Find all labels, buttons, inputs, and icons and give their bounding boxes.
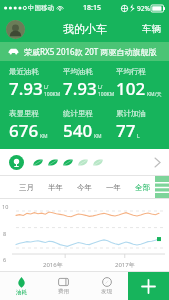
button[interactable]: Menu bbox=[155, 176, 169, 198]
staticText: L/100KM bbox=[44, 84, 63, 98]
button[interactable]: 半年 bbox=[43, 180, 68, 195]
button[interactable]: 油耗 bbox=[0, 272, 42, 300]
staticText: 102 bbox=[116, 77, 146, 100]
staticText: 540 bbox=[63, 119, 93, 142]
staticText: 平均油耗 bbox=[63, 67, 93, 76]
staticText: 全部 bbox=[135, 183, 150, 192]
button[interactable]: Profile bbox=[6, 20, 25, 39]
staticText: 一年 bbox=[106, 183, 121, 192]
staticText: L bbox=[137, 133, 140, 140]
staticText: 676 bbox=[9, 119, 39, 142]
button[interactable]: 一年 bbox=[101, 180, 126, 195]
staticText: 18:15 bbox=[83, 3, 101, 13]
staticText: 10 bbox=[2, 203, 9, 210]
button[interactable]: 荣威RX5 2016款 20T 两驱自动旗舰版 bbox=[0, 42, 169, 61]
staticText: 77 bbox=[116, 119, 136, 142]
staticText: 8 bbox=[3, 230, 7, 237]
button[interactable]: 车辆 bbox=[134, 19, 169, 39]
staticText: 车辆 bbox=[142, 23, 161, 35]
staticText: 最近油耗 bbox=[9, 67, 39, 76]
button[interactable] bbox=[0, 149, 169, 175]
staticText: 我的小车 bbox=[63, 22, 107, 36]
staticText: 表显里程 bbox=[9, 109, 39, 118]
staticText: 92% bbox=[137, 4, 150, 13]
staticText: 7.93 bbox=[63, 77, 97, 100]
button[interactable]: Add bbox=[128, 272, 169, 300]
button[interactable]: 全部 bbox=[130, 180, 155, 195]
staticText: 油耗 bbox=[16, 289, 27, 296]
staticText: 费用 bbox=[58, 288, 69, 295]
staticText: KM bbox=[40, 133, 48, 140]
staticText: 7.93 bbox=[9, 77, 43, 100]
staticText: KM bbox=[94, 133, 102, 140]
staticText: 6 bbox=[3, 256, 7, 263]
button[interactable]: 发现 bbox=[85, 272, 128, 300]
staticText: 三月 bbox=[19, 183, 34, 192]
staticText: 平均行程 bbox=[116, 67, 146, 76]
staticText: 2017年 bbox=[115, 261, 135, 269]
button[interactable]: 三月 bbox=[14, 180, 39, 195]
staticText: 中国移动 bbox=[28, 4, 54, 12]
staticText: 今年 bbox=[77, 183, 92, 192]
staticText: 累计加油 bbox=[116, 109, 146, 118]
staticText: 2016年 bbox=[43, 261, 63, 269]
staticText: 荣威RX5 2016款 20T 两驱自动旗舰版 bbox=[24, 46, 157, 57]
button[interactable]: 费用 bbox=[42, 272, 85, 300]
staticText: 半年 bbox=[48, 183, 63, 192]
staticText: KM/天 bbox=[147, 91, 162, 98]
staticText: 统计里程 bbox=[63, 109, 93, 118]
button[interactable]: 今年 bbox=[72, 180, 97, 195]
staticText: L/100KM bbox=[98, 84, 116, 98]
staticText: 发现 bbox=[101, 288, 112, 295]
